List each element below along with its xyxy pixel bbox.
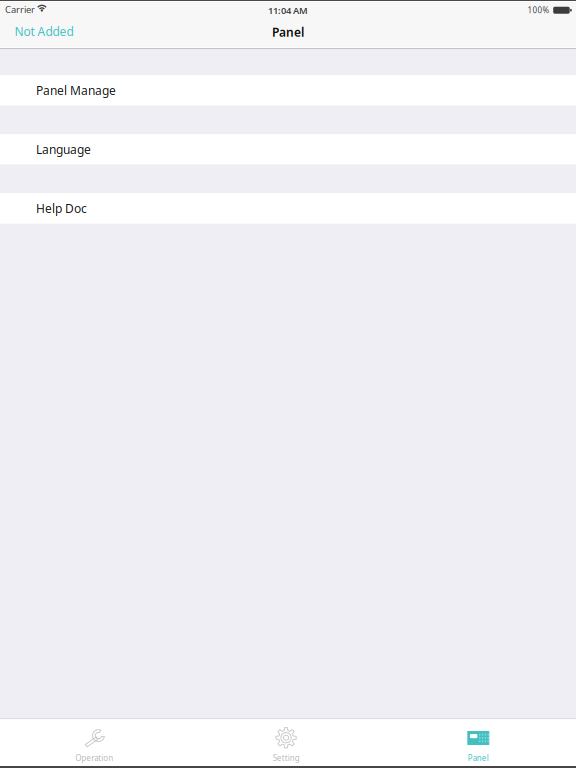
button[interactable]: Help Doc xyxy=(0,193,576,224)
staticText: Not Added xyxy=(14,23,73,39)
staticText: Language xyxy=(36,141,91,157)
staticText: Setting xyxy=(273,752,300,763)
staticText: 100% xyxy=(528,5,550,15)
button[interactable]: Panel Manage xyxy=(0,75,576,106)
button[interactable]: Setting xyxy=(190,718,382,766)
staticText: 11:04 AM xyxy=(268,4,308,17)
staticText: Operation xyxy=(75,752,113,763)
staticText: Panel xyxy=(468,752,489,763)
staticText: Panel Manage xyxy=(36,82,116,98)
button[interactable]: Language xyxy=(0,134,576,165)
staticText: Help Doc xyxy=(36,200,87,216)
staticText: Panel xyxy=(272,24,304,40)
button[interactable]: Panel xyxy=(382,718,574,766)
button[interactable]: Not Added xyxy=(0,21,88,41)
staticText: Carrier xyxy=(5,3,35,16)
button[interactable]: Operation xyxy=(0,718,190,766)
